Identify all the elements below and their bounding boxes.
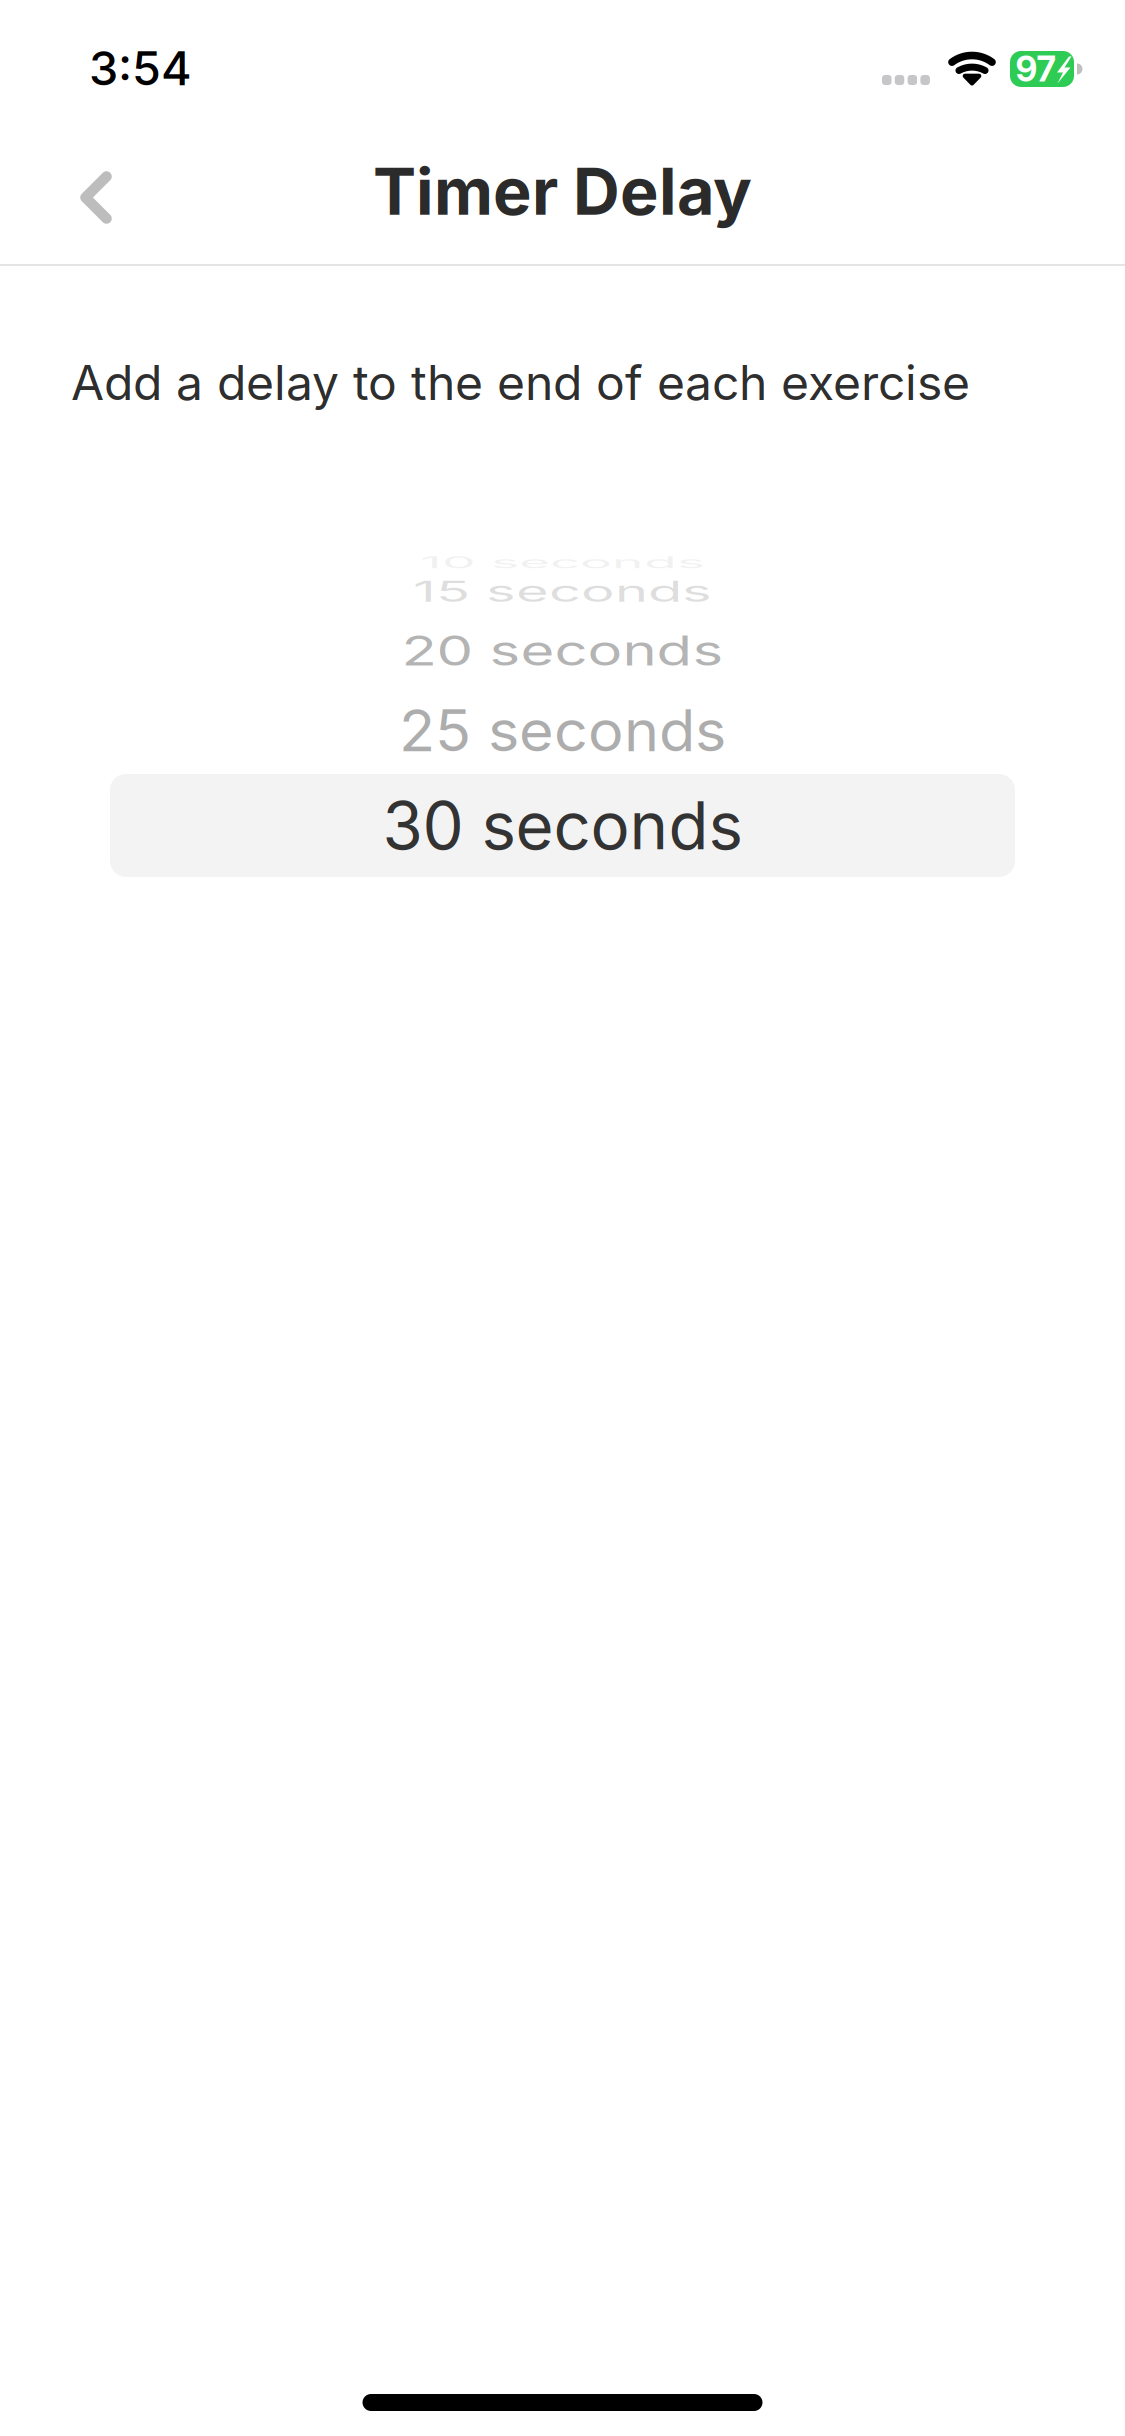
button[interactable]: 25 seconds — [110, 690, 1015, 770]
staticText: Timer Delay — [373, 152, 752, 230]
staticText: 15 seconds — [413, 558, 712, 625]
button[interactable]: 30 seconds — [110, 774, 1015, 877]
staticText: Add a delay to the end of each exercise — [71, 353, 970, 412]
staticText: 20 seconds — [401, 615, 723, 686]
staticText: 10 seconds — [420, 530, 705, 595]
staticText: 30 seconds — [382, 786, 742, 865]
button[interactable]: 20 seconds — [110, 622, 1015, 678]
staticText: 97 — [1015, 48, 1055, 90]
staticText: 3:54 — [89, 40, 192, 96]
staticText: 25 seconds — [399, 695, 726, 766]
button[interactable]: 15 seconds — [110, 574, 1015, 608]
button[interactable]: Back — [40, 141, 152, 253]
